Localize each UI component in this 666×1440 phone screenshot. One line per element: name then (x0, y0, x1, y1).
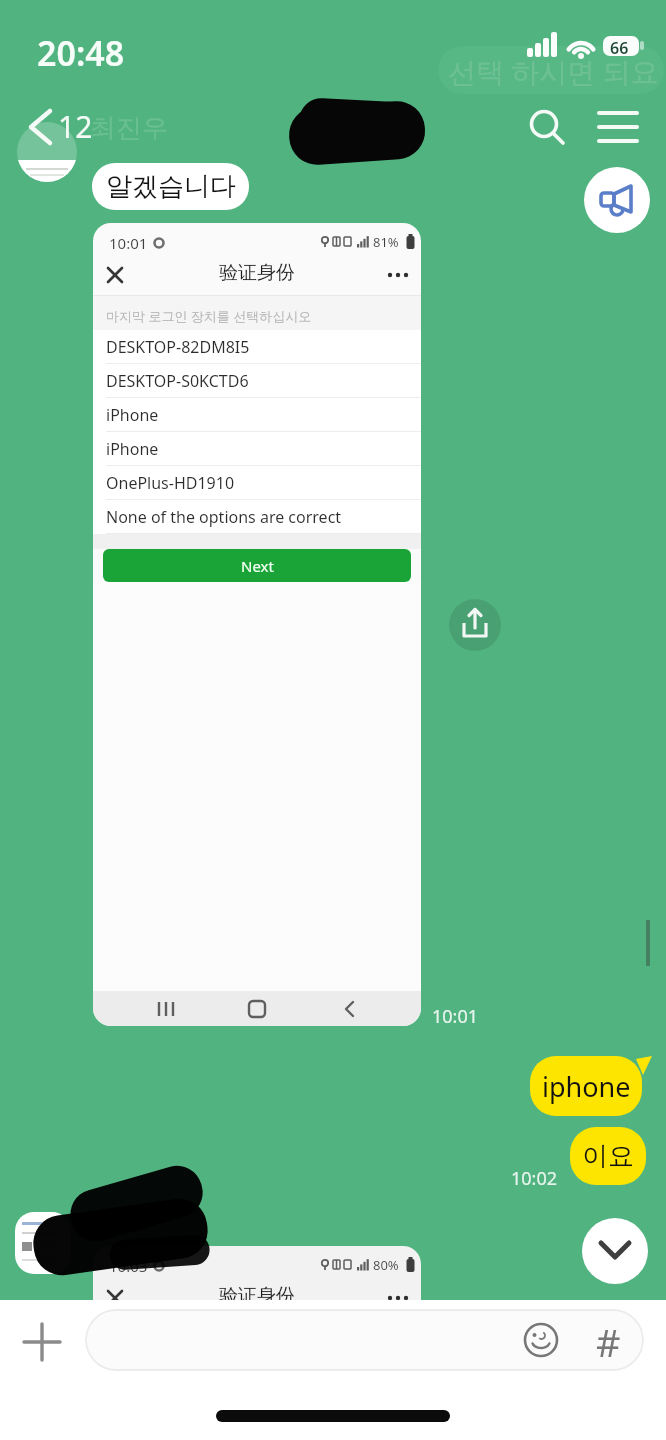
button[interactable]: DESKTOP-S0KCTD6 (93, 364, 421, 398)
staticText: 10:01 (432, 1004, 479, 1029)
button[interactable] (24, 1324, 60, 1360)
button[interactable] (387, 271, 413, 279)
button[interactable] (598, 106, 640, 148)
staticText: 80% (373, 1256, 399, 1274)
button[interactable] (107, 1290, 123, 1306)
button[interactable] (85, 1309, 644, 1371)
button[interactable]: None of the options are correct (93, 500, 421, 534)
button[interactable] (107, 267, 123, 283)
button[interactable]: Next (103, 549, 411, 582)
staticText: # (596, 1316, 621, 1368)
button[interactable]: iPhone (93, 398, 421, 432)
button[interactable] (582, 1218, 648, 1284)
staticText: 10:02 (511, 1166, 558, 1191)
staticText: 마지막 로그인 장치를 선택하십시오 (106, 307, 312, 325)
button[interactable] (526, 106, 568, 148)
staticText: OnePlus-HD1910 (106, 472, 235, 494)
staticText: iphone (542, 1068, 631, 1105)
button[interactable] (449, 599, 501, 651)
staticText: 최진우 (90, 112, 168, 145)
staticText: iPhone (106, 404, 159, 426)
staticText: 이요 (582, 1140, 634, 1173)
button[interactable] (387, 1294, 413, 1302)
staticText: 12 (58, 106, 93, 147)
staticText: 선택 하시면 되요 (448, 52, 659, 90)
staticText: 验证身份 (219, 1284, 295, 1308)
staticText: Next (241, 556, 274, 576)
staticText: DESKTOP-82DM8I5 (106, 336, 250, 358)
button[interactable] (523, 1322, 559, 1358)
staticText: 10:03 (109, 1256, 148, 1276)
button[interactable]: iphone (530, 1056, 642, 1116)
button[interactable]: 이요 (570, 1127, 646, 1185)
button[interactable]: 10:01 (93, 223, 421, 1026)
button[interactable]: OnePlus-HD1910 (93, 466, 421, 500)
staticText: 验证身份 (219, 261, 295, 285)
staticText: 알겠습니다 (106, 170, 236, 203)
staticText: None of the options are correct (106, 506, 342, 528)
staticText: 20:48 (37, 30, 125, 76)
button[interactable] (584, 167, 650, 233)
button[interactable]: iPhone (93, 432, 421, 466)
staticText: 81% (373, 233, 399, 251)
button[interactable]: DESKTOP-82DM8I5 (93, 330, 421, 364)
staticText: 10:01 (109, 233, 148, 253)
staticText: 66 (610, 37, 629, 59)
staticText: DESKTOP-S0KCTD6 (106, 370, 249, 392)
button[interactable]: 알겠습니다 (92, 163, 249, 210)
staticText: iPhone (106, 438, 159, 460)
